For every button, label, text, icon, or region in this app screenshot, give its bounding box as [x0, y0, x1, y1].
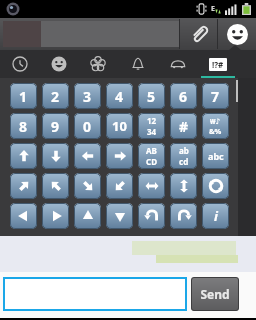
button[interactable]: Objects	[118, 50, 158, 78]
staticText: 34	[147, 126, 157, 137]
button[interactable]	[3, 277, 187, 311]
button[interactable]: Recent	[0, 50, 39, 78]
button[interactable]: Symbol key	[170, 203, 197, 229]
button[interactable]: !?#	[198, 50, 238, 78]
button[interactable]: 12	[138, 113, 165, 139]
staticText: cd	[179, 156, 189, 167]
staticText: #	[179, 117, 189, 136]
staticText: Send	[200, 286, 230, 302]
button[interactable]: 4	[106, 83, 133, 109]
button[interactable]: 1	[10, 83, 37, 109]
staticText: CD	[146, 156, 157, 167]
staticText: 3	[83, 87, 92, 106]
staticText: 10	[112, 117, 127, 135]
button[interactable]: i	[202, 203, 229, 229]
button[interactable]: Smileys	[39, 50, 78, 78]
button[interactable]: 9	[42, 113, 69, 139]
staticText: i	[214, 207, 218, 225]
button[interactable]: Attach	[180, 18, 217, 50]
button[interactable]: ₩♪	[202, 113, 229, 139]
button[interactable]: Symbol key	[10, 143, 37, 169]
staticText: 9	[51, 117, 60, 136]
staticText: 12	[147, 115, 157, 126]
button[interactable]: Symbol key	[74, 173, 101, 199]
button[interactable]: Symbol key	[138, 203, 165, 229]
button[interactable]: abc	[202, 143, 229, 169]
staticText: &%	[209, 126, 222, 136]
button[interactable]: Symbol key	[170, 173, 197, 199]
button[interactable]: 8	[10, 113, 37, 139]
button[interactable]: Emoji	[218, 18, 256, 50]
button[interactable]: 3	[74, 83, 101, 109]
button[interactable]: 0	[74, 113, 101, 139]
staticText: 2	[51, 87, 60, 106]
button[interactable]: ab	[170, 143, 197, 169]
button[interactable]: Symbol key	[106, 203, 133, 229]
button[interactable]: 2	[42, 83, 69, 109]
button[interactable]: #	[170, 113, 197, 139]
button[interactable]: 6	[170, 83, 197, 109]
staticText: ab	[179, 145, 189, 156]
button[interactable]: 5	[138, 83, 165, 109]
staticText: 0	[83, 117, 92, 136]
staticText: ₩♪	[210, 116, 221, 126]
button[interactable]: 10	[106, 113, 133, 139]
button[interactable]: 7	[202, 83, 229, 109]
button[interactable]: Symbol key	[10, 203, 37, 229]
staticText: AB	[146, 145, 157, 156]
button[interactable]: Places	[158, 50, 198, 78]
button[interactable]: Symbol key	[74, 143, 101, 169]
button[interactable]: Symbol key	[42, 143, 69, 169]
button[interactable]	[3, 21, 180, 47]
staticText: 1	[19, 87, 28, 106]
button[interactable]: Symbol key	[106, 143, 133, 169]
staticText: 7	[211, 87, 220, 106]
button[interactable]: Symbol key	[42, 203, 69, 229]
button[interactable]: Symbol key	[106, 173, 133, 199]
button[interactable]: Symbol key	[74, 203, 101, 229]
staticText: abc	[208, 150, 224, 162]
button[interactable]: Symbol key	[42, 173, 69, 199]
staticText: 6	[179, 87, 188, 106]
staticText: !?#	[212, 59, 224, 70]
button[interactable]: Symbol key	[202, 173, 229, 199]
button[interactable]: Send	[191, 277, 239, 311]
button[interactable]: AB	[138, 143, 165, 169]
staticText: 8	[19, 117, 28, 136]
staticText: E	[211, 4, 215, 14]
staticText: 4	[115, 87, 124, 106]
button[interactable]: Nature	[78, 50, 118, 78]
staticText: 5	[147, 87, 156, 106]
button[interactable]: Symbol key	[10, 173, 37, 199]
button[interactable]: Symbol key	[138, 173, 165, 199]
